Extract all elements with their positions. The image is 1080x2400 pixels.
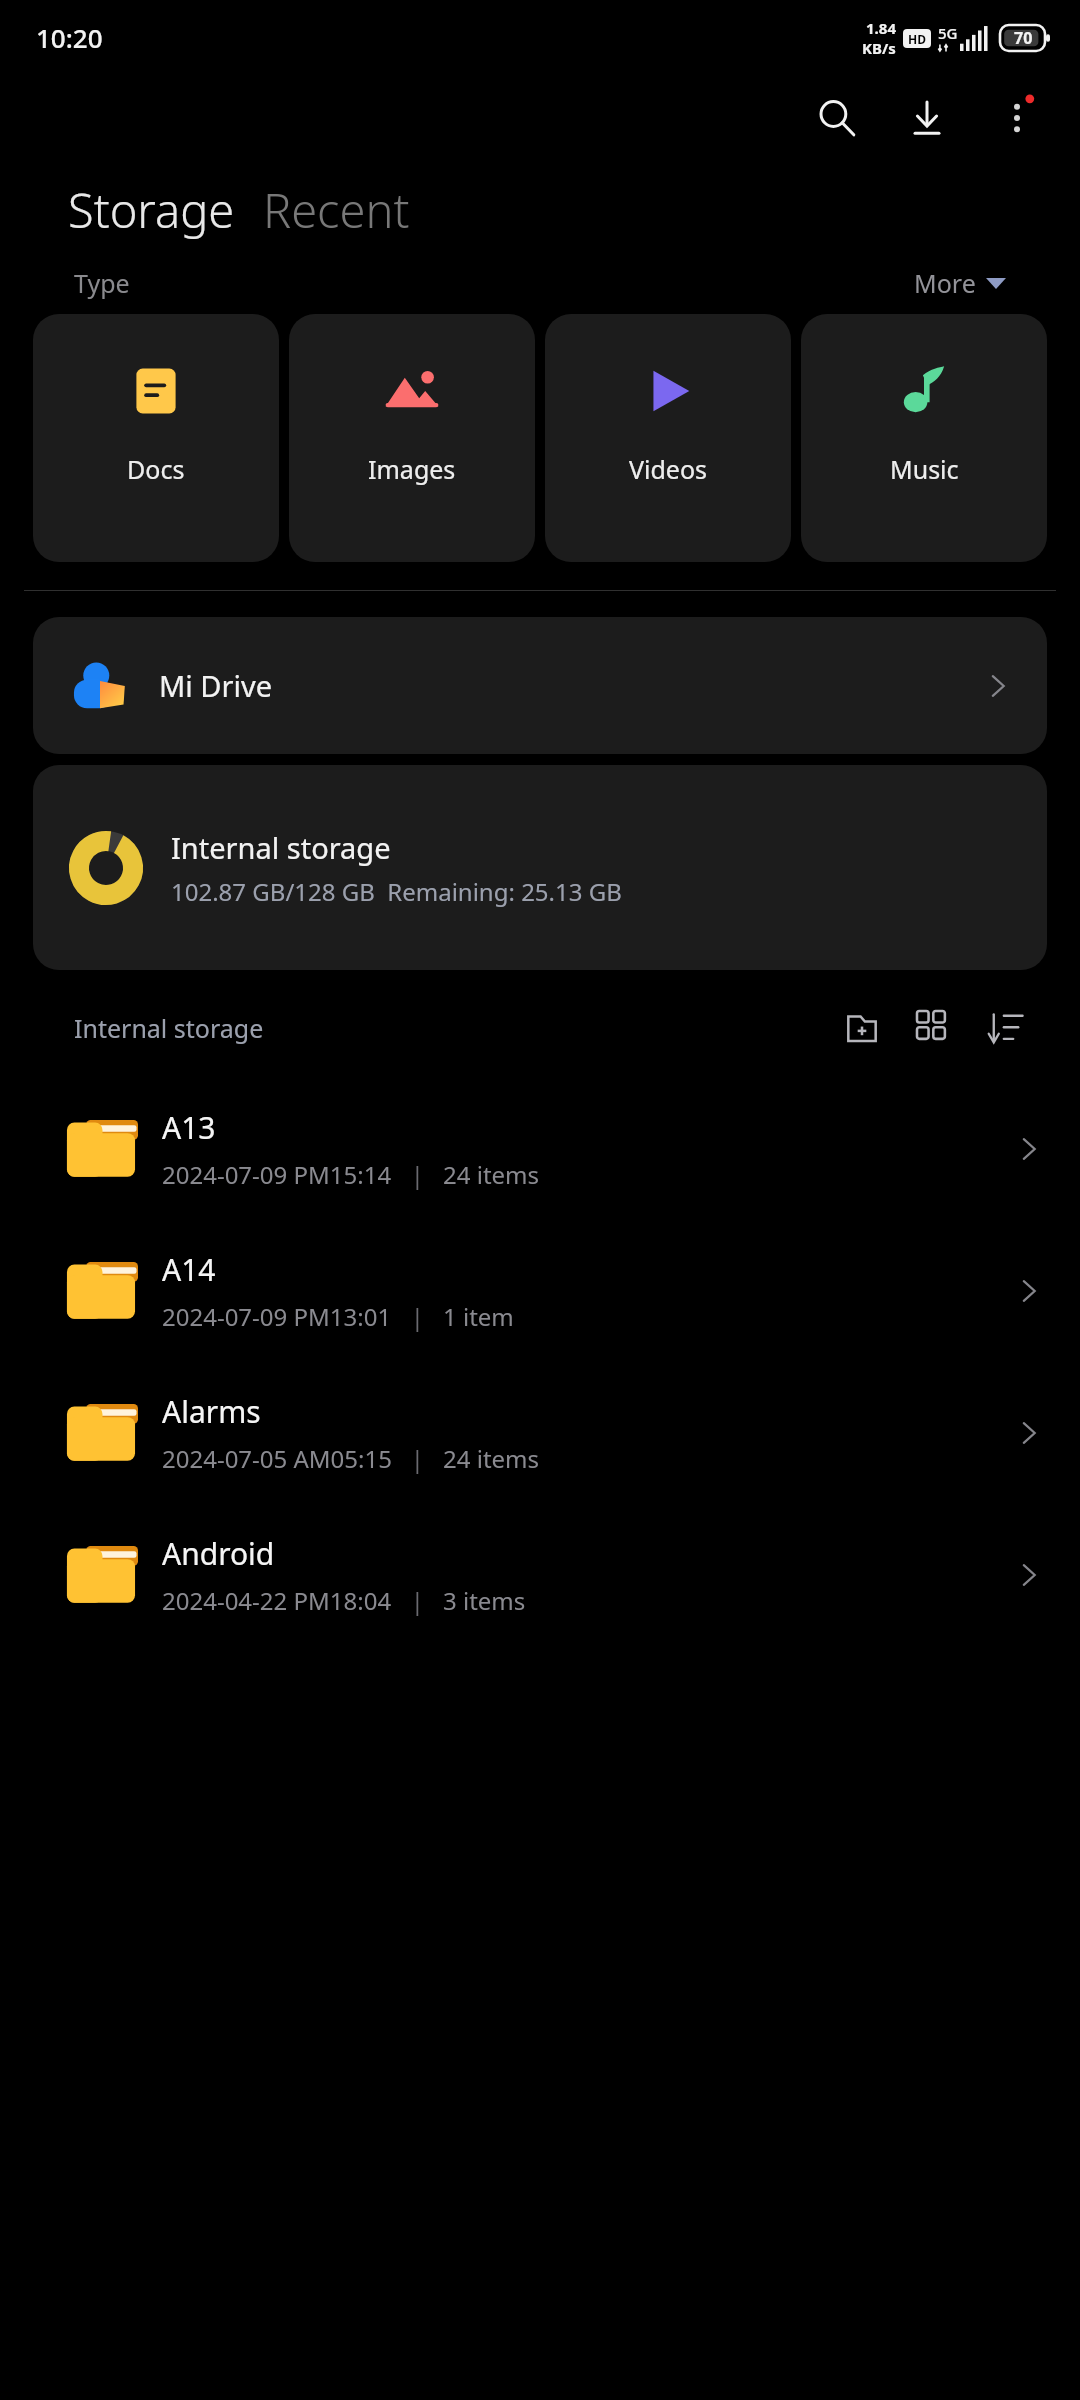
staticText: Docs [127, 452, 185, 486]
staticText: KB/s [862, 38, 896, 58]
button[interactable]: Videos [545, 314, 791, 562]
staticText: | [392, 1584, 443, 1617]
staticText: | [392, 1300, 443, 1333]
staticText: 24 items [443, 1158, 540, 1191]
staticText: Music [890, 452, 959, 486]
staticText: Internal storage [171, 828, 391, 867]
staticText: Android [162, 1533, 275, 1574]
staticText: A13 [162, 1107, 216, 1148]
staticText: Images [368, 452, 456, 486]
button[interactable]: Internal storage [33, 765, 1047, 970]
staticText: Mi Drive [159, 666, 273, 705]
staticText: | [392, 1442, 443, 1475]
staticText: 1 item [443, 1300, 514, 1333]
staticText: 5G [938, 23, 958, 43]
button[interactable]: Grid view [898, 992, 970, 1064]
button[interactable]: Sort [970, 992, 1042, 1064]
button[interactable]: Music [801, 314, 1047, 562]
button[interactable]: A14 [0, 1220, 1080, 1362]
button[interactable]: Search [792, 75, 882, 160]
staticText: 2024-04-22 PM18:04 [162, 1584, 392, 1617]
button[interactable]: Docs [33, 314, 279, 562]
staticText: 2024-07-09 PM13:01 [162, 1300, 392, 1333]
staticText: More [914, 266, 976, 300]
staticText: 1.84 [866, 18, 896, 38]
button[interactable]: Android [0, 1504, 1080, 1646]
staticText: Alarms [162, 1391, 261, 1432]
button[interactable]: Recent [263, 178, 410, 242]
staticText: 3 items [443, 1584, 526, 1617]
button[interactable]: Storage [68, 178, 235, 242]
staticText: Type [74, 266, 130, 300]
button[interactable]: Mi Drive [33, 617, 1047, 754]
button[interactable]: New folder [826, 992, 898, 1064]
button[interactable]: More [914, 266, 1006, 300]
button[interactable]: Alarms [0, 1362, 1080, 1504]
staticText: Videos [629, 452, 708, 486]
staticText: 102.87 GB/128 GB Remaining: 25.13 GB [171, 875, 622, 908]
staticText: HD [908, 31, 926, 47]
button[interactable]: Images [289, 314, 535, 562]
staticText: A14 [162, 1249, 216, 1290]
staticText: Internal storage [74, 1011, 264, 1045]
button[interactable]: Downloads [882, 75, 972, 160]
button[interactable]: A13 [0, 1078, 1080, 1220]
button[interactable]: More options [972, 75, 1062, 160]
staticText: 70 [1014, 27, 1033, 49]
staticText: 10:20 [36, 20, 103, 55]
staticText: 24 items [443, 1442, 540, 1475]
staticText: 2024-07-05 AM05:15 [162, 1442, 392, 1475]
staticText: 2024-07-09 PM15:14 [162, 1158, 392, 1191]
staticText: | [392, 1158, 443, 1191]
